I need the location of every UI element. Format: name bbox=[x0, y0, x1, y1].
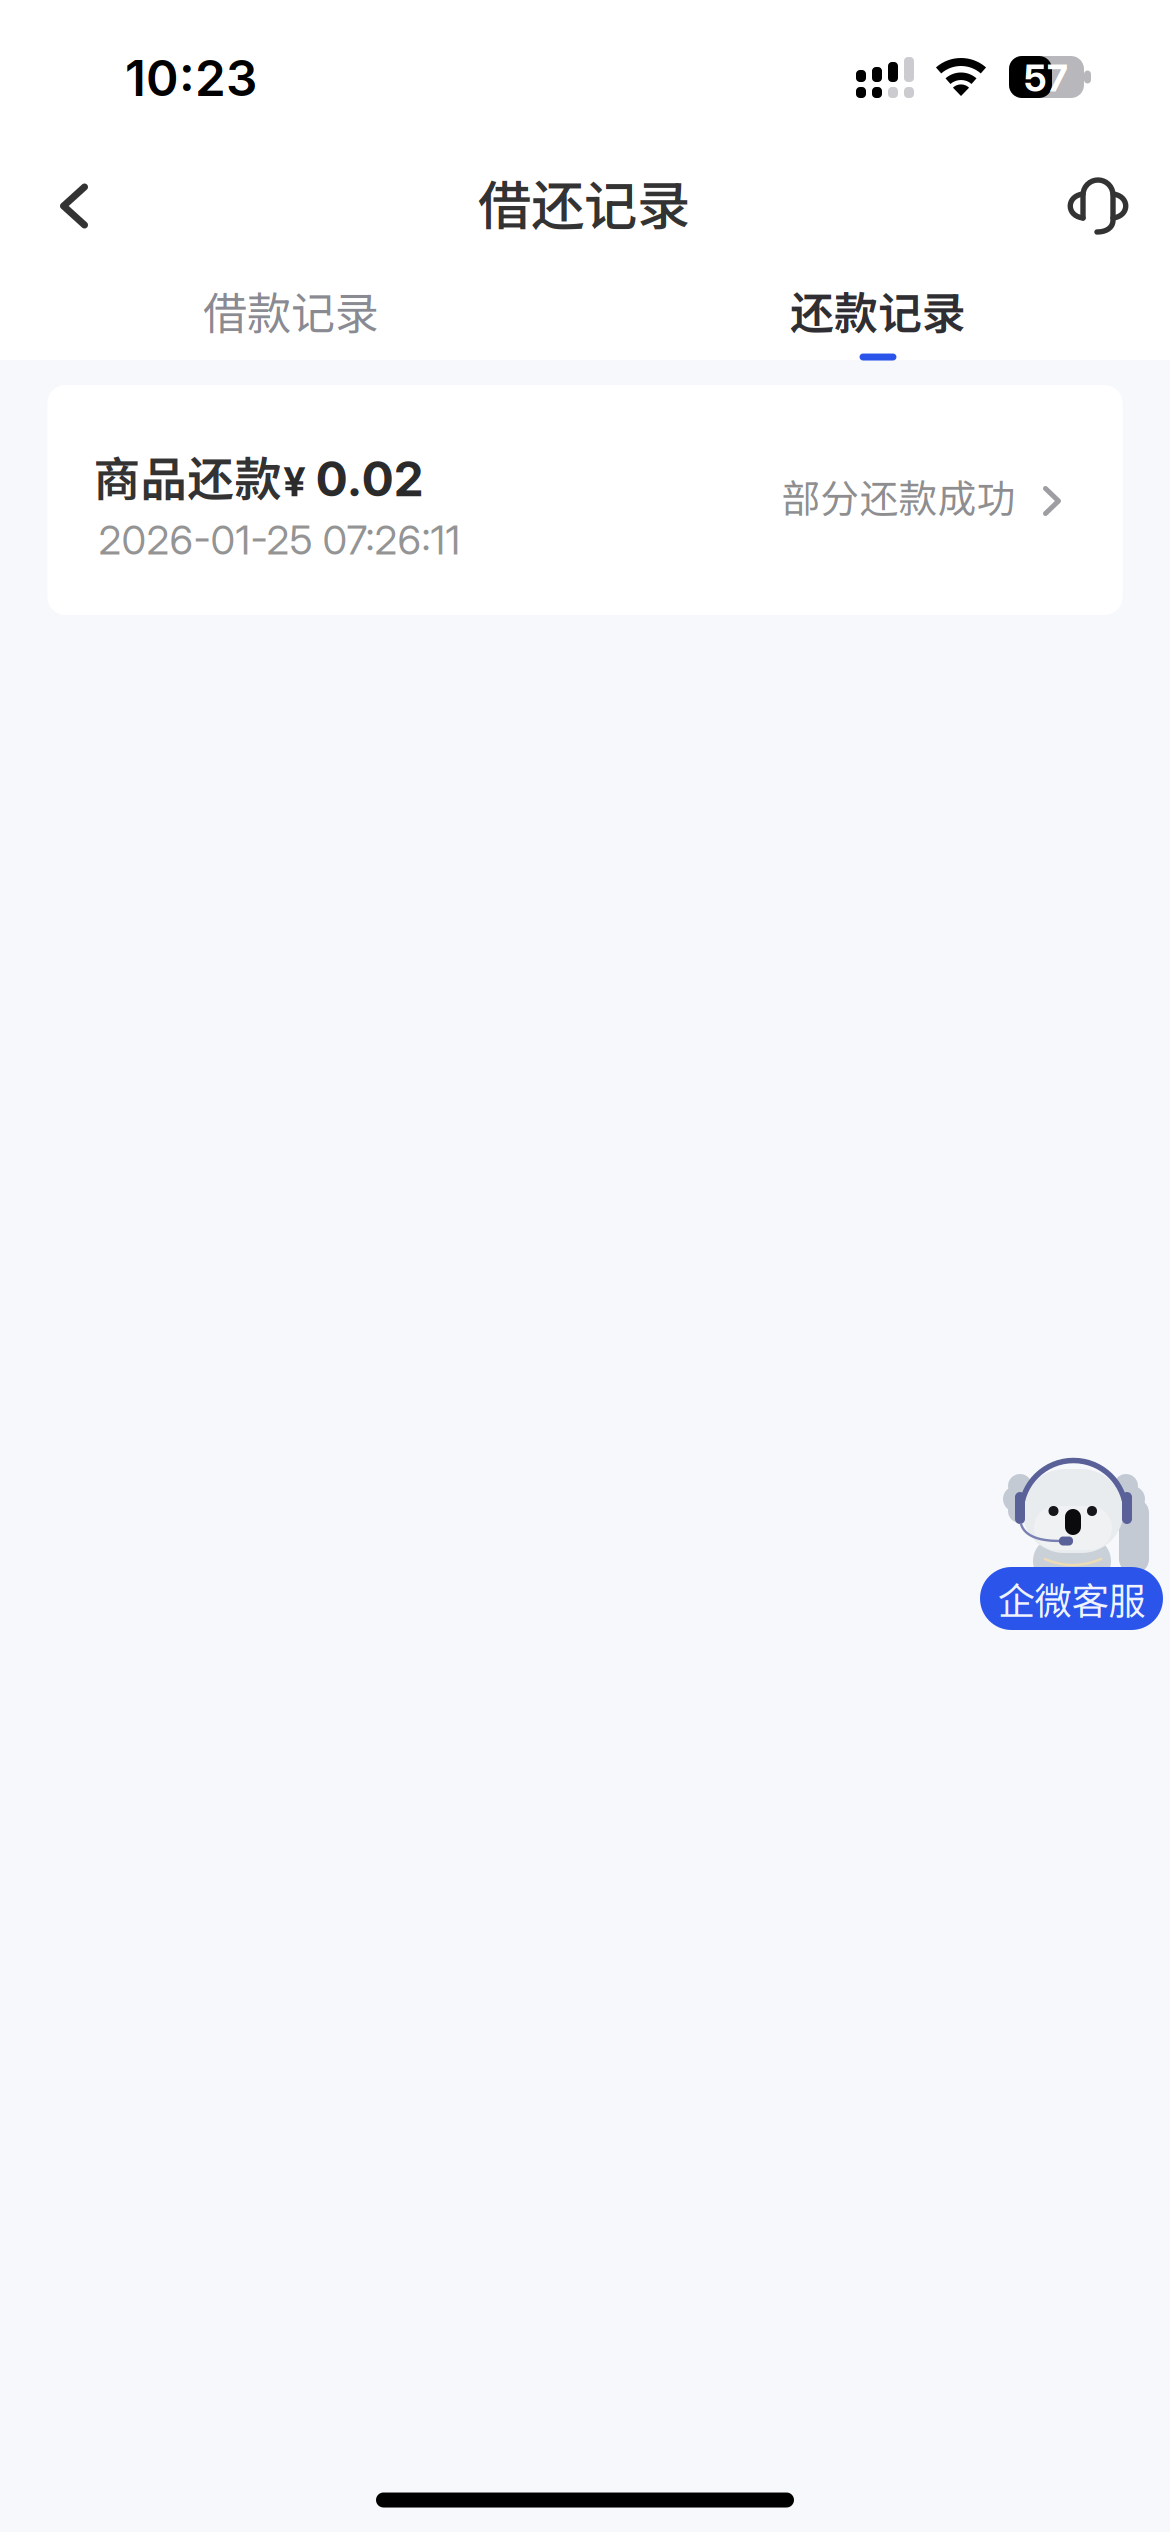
staticText: 部分还款成功 bbox=[781, 468, 1015, 524]
staticText: 10:23 bbox=[125, 48, 257, 108]
staticText: 借还记录 bbox=[478, 163, 690, 241]
staticText: 企微客服 bbox=[997, 1571, 1145, 1626]
button[interactable]: 商品还款 bbox=[47, 385, 1122, 615]
staticText: 还款记录 bbox=[790, 278, 966, 342]
staticText: 0.02 bbox=[315, 450, 423, 508]
staticText: 2026-01-25 07:26:11 bbox=[98, 516, 460, 564]
button[interactable]: 在线客服 bbox=[1043, 156, 1153, 256]
button[interactable]: 借款记录 bbox=[141, 262, 441, 358]
staticText: 商品还款 bbox=[93, 442, 281, 510]
staticText: ¥ bbox=[283, 458, 305, 506]
button[interactable]: 还款记录 bbox=[728, 262, 1028, 358]
button[interactable]: 企微客服 bbox=[980, 1466, 1163, 1630]
staticText: 57 bbox=[1024, 55, 1068, 101]
staticText: 借款记录 bbox=[203, 278, 379, 342]
button[interactable]: 返回 bbox=[19, 156, 129, 256]
